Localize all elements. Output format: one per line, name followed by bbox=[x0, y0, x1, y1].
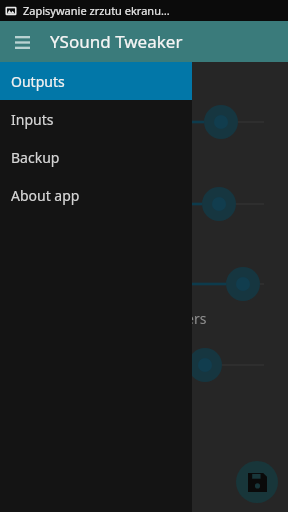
button[interactable]: Open navigation drawer bbox=[6, 26, 38, 58]
staticText: Outputs bbox=[11, 72, 65, 91]
staticText: Backup bbox=[11, 148, 60, 167]
staticText: About app bbox=[11, 186, 80, 205]
button[interactable]: Save bbox=[236, 461, 278, 503]
button[interactable]: About app bbox=[0, 176, 192, 214]
button[interactable]: Inputs bbox=[0, 100, 192, 138]
staticText: Zapisywanie zrzutu ekranu… bbox=[23, 3, 170, 18]
staticText: Inputs bbox=[11, 110, 54, 129]
button[interactable]: Outputs bbox=[0, 62, 192, 100]
button[interactable]: Backup bbox=[0, 138, 192, 176]
staticText: YSound Tweaker bbox=[50, 30, 183, 53]
staticText: ers bbox=[186, 309, 207, 328]
